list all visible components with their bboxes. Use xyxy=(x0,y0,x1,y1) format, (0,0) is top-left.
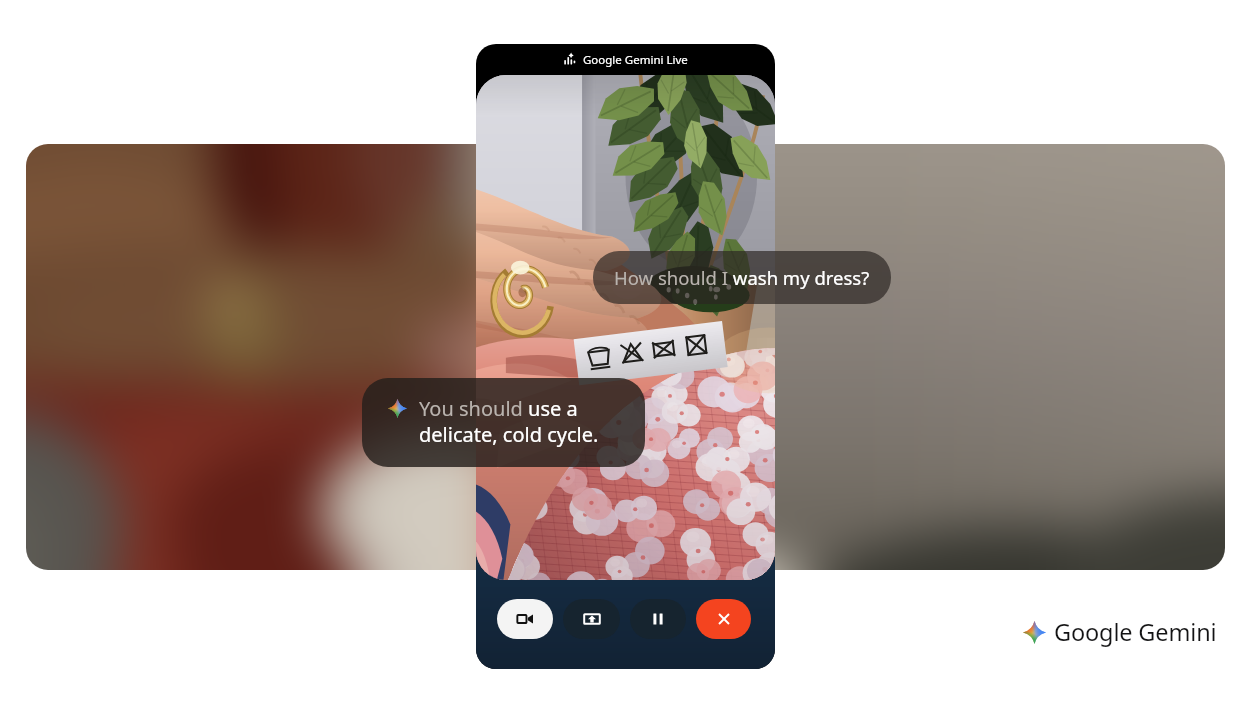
button[interactable]: Pause xyxy=(630,599,686,639)
staticText: You should use a delicate, cold cycle. xyxy=(419,395,599,448)
button[interactable]: Turn off camera xyxy=(497,599,553,639)
button[interactable]: You should use a delicate, cold cycle. xyxy=(362,378,645,467)
staticText: How should I wash my dress? xyxy=(614,265,870,290)
button[interactable]: How should I wash my dress? xyxy=(593,251,891,304)
staticText: Google Gemini Live xyxy=(583,52,688,68)
button[interactable]: Share your screen xyxy=(563,599,620,639)
button[interactable]: End session xyxy=(696,599,751,639)
staticText: Google Gemini xyxy=(1054,616,1217,648)
